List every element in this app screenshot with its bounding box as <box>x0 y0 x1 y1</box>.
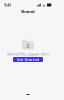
staticText: Get Started <box>16 57 39 62</box>
staticText: Shared files appear here <box>7 51 49 57</box>
button[interactable]: Get Started <box>13 57 43 62</box>
staticText: 9:41 <box>4 2 11 8</box>
staticText: Shared <box>21 9 35 14</box>
